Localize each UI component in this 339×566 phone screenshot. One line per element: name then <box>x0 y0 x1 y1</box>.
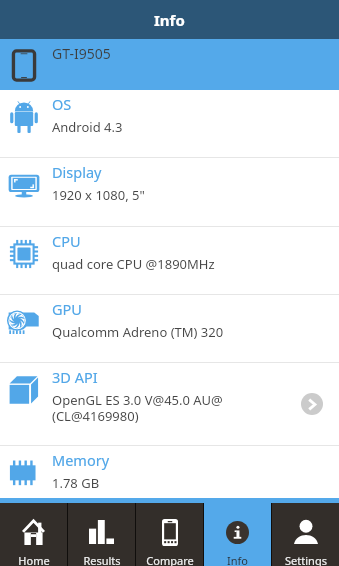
staticText: Info <box>154 10 185 30</box>
button[interactable]: OS <box>0 90 339 157</box>
button[interactable]: Compare <box>136 503 203 566</box>
button[interactable]: Memory <box>0 446 339 498</box>
staticText: GPU <box>52 299 82 319</box>
button[interactable]: More details <box>301 393 323 415</box>
button[interactable]: 3D API <box>0 363 339 445</box>
staticText: Results <box>83 553 121 566</box>
staticText: Qualcomm Adreno (TM) 320 <box>52 323 224 341</box>
staticText: Display <box>52 162 102 182</box>
staticText: 1920 x 1080, 5" <box>52 186 145 204</box>
button[interactable]: Home <box>0 503 67 566</box>
staticText: Settings <box>285 553 327 566</box>
staticText: Info <box>227 553 248 566</box>
button[interactable]: GPU <box>0 295 339 362</box>
button[interactable]: Info <box>204 503 271 566</box>
button[interactable]: Display <box>0 158 339 226</box>
staticText: quad core CPU @1890MHz <box>52 255 215 273</box>
button[interactable]: Settings <box>272 503 339 566</box>
staticText: GT-I9505 <box>52 44 111 63</box>
button[interactable]: CPU <box>0 227 339 294</box>
button[interactable]: GT-I9505 <box>0 39 339 90</box>
staticText: Compare <box>146 553 194 566</box>
staticText: Android 4.3 <box>52 118 123 136</box>
staticText: Home <box>18 553 50 566</box>
staticText: 3D API <box>52 367 98 387</box>
staticText: Memory <box>52 450 110 470</box>
staticText: OpenGL ES 3.0 V@45.0 AU@ (CL@4169980) <box>52 391 223 424</box>
button[interactable]: Results <box>68 503 135 566</box>
staticText: 1.78 GB <box>52 474 100 492</box>
staticText: CPU <box>52 231 81 251</box>
staticText: OS <box>52 94 72 114</box>
